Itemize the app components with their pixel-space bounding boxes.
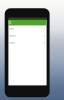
button[interactable] bbox=[7, 39, 47, 46]
button[interactable] bbox=[7, 25, 47, 32]
button[interactable]: Navigation menu bbox=[8, 21, 11, 24]
button[interactable] bbox=[7, 32, 47, 39]
button[interactable]: Navigation menu bbox=[7, 20, 47, 25]
